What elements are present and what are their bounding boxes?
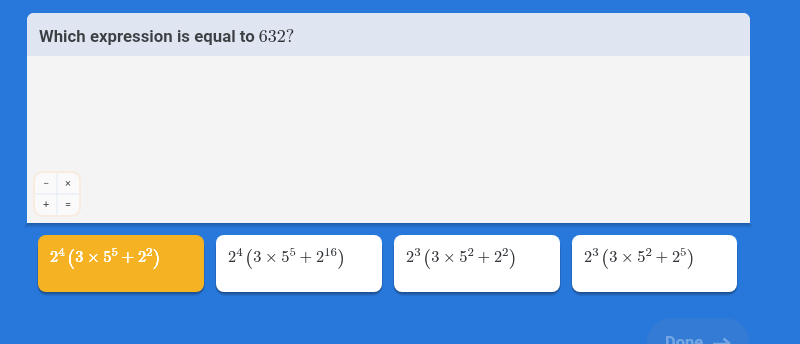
button[interactable]: 23 (3 × 52 + 25) (572, 235, 737, 292)
staticText: × (65, 177, 71, 190)
staticText: 24 (3 × 55 + 216) (228, 241, 345, 270)
staticText: Done (665, 333, 704, 344)
staticText: 24 (3 × 55 + 22) (50, 241, 161, 270)
staticText: 23 (3 × 52 + 25) (584, 241, 695, 270)
staticText: + (43, 198, 50, 211)
button[interactable]: minus (35, 173, 57, 194)
staticText: 23 (3 × 52 + 25) (584, 241, 695, 270)
button[interactable]: 24 (3 × 55 + 22) (38, 235, 204, 292)
button[interactable]: 24 (3 × 55 + 216) (216, 235, 382, 292)
button[interactable]: times (57, 173, 79, 194)
staticText: 24 (3 × 55 + 216) (228, 241, 345, 270)
staticText: 24 (3 × 55 + 22) (50, 241, 161, 270)
button[interactable]: equals (57, 194, 79, 215)
staticText: 23 (3 × 52 + 22) (406, 241, 517, 270)
staticText: Which expression is equal to 632? (39, 22, 295, 48)
staticText: Which expression is equal to 632? (39, 22, 295, 48)
button[interactable]: 23 (3 × 52 + 22) (394, 235, 560, 292)
staticText: = (65, 198, 72, 211)
staticText: 23 (3 × 52 + 22) (406, 241, 517, 270)
button[interactable]: Done (647, 318, 749, 344)
button[interactable]: plus (35, 194, 57, 215)
staticText: − (43, 177, 50, 190)
